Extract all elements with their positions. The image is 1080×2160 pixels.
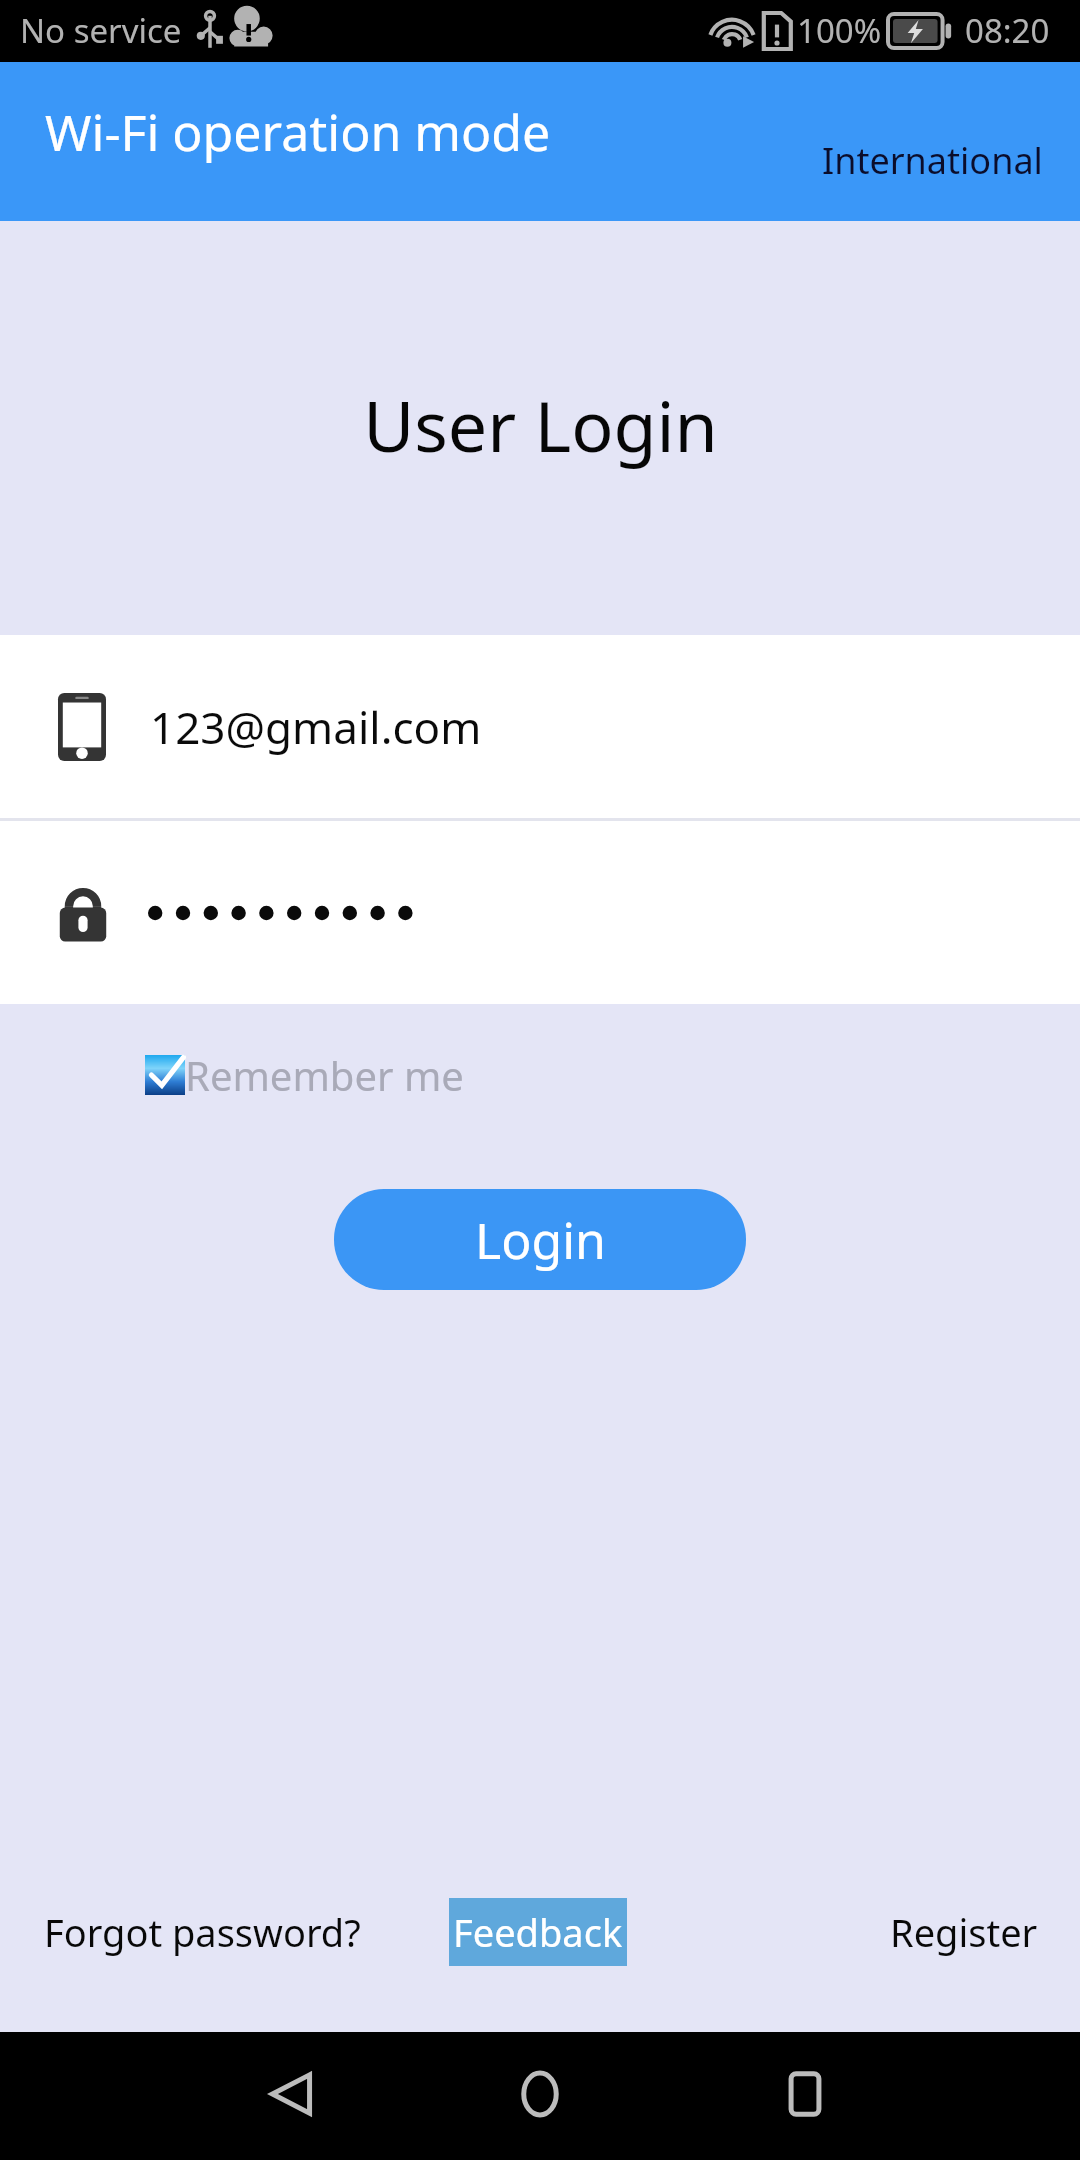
staticText: Login xyxy=(475,1206,606,1274)
button[interactable]: Forgot password? xyxy=(30,1896,375,1968)
staticText: 123@gmail.com xyxy=(150,697,482,757)
other: Password xyxy=(56,879,110,947)
button[interactable]: Password xyxy=(0,821,1080,1004)
other: Account xyxy=(58,693,106,761)
staticText: 100% xyxy=(797,8,882,53)
button[interactable]: International xyxy=(820,136,1045,185)
button[interactable]: Remember me xyxy=(145,1048,464,1102)
other: Remember me xyxy=(145,1055,185,1095)
button[interactable]: Back xyxy=(262,2065,320,2123)
button[interactable]: Recent apps xyxy=(776,2065,834,2123)
button[interactable]: Feedback xyxy=(449,1898,627,1966)
staticText: User Login xyxy=(363,377,718,472)
staticText: Wi-Fi operation mode xyxy=(45,98,551,166)
staticText: Feedback xyxy=(453,1906,623,1958)
staticText: No service xyxy=(20,8,182,53)
staticText: Forgot password? xyxy=(44,1906,361,1958)
staticText: Register xyxy=(890,1906,1038,1958)
staticText: 08:20 xyxy=(965,8,1050,53)
button[interactable]: Register xyxy=(876,1896,1052,1968)
staticText: Remember me xyxy=(185,1048,464,1102)
button[interactable]: Login xyxy=(334,1189,746,1290)
button[interactable]: Account xyxy=(0,635,1080,818)
button[interactable]: Home xyxy=(511,2065,569,2123)
